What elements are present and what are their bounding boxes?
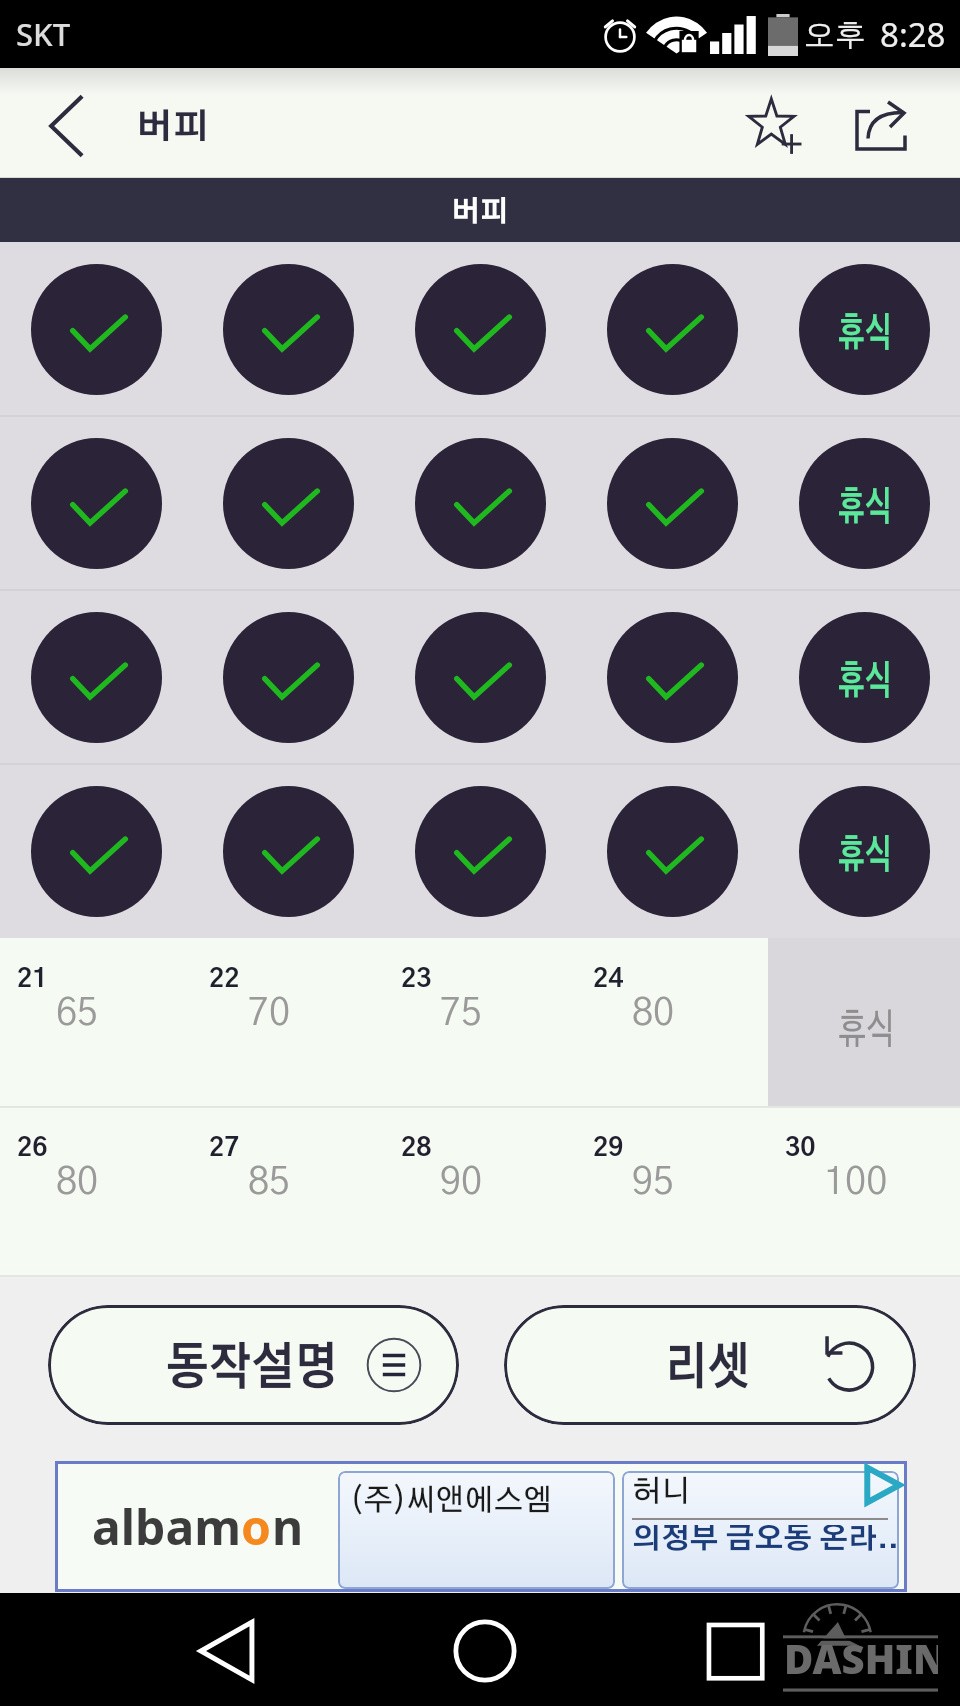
button[interactable]: Share [828,68,934,178]
staticText: 휴식 [838,836,892,875]
staticText: 27 [209,1135,240,1161]
staticText: o [241,1494,272,1559]
button[interactable] [384,242,576,416]
button[interactable] [576,764,768,938]
button[interactable]: 휴식 [768,764,960,938]
staticText: 70 [248,995,291,1033]
button[interactable] [576,416,768,590]
staticText: 21 [17,966,48,992]
button[interactable]: Advertisement [58,1464,904,1589]
button[interactable]: 휴식 [768,938,960,1107]
button[interactable]: 휴식 [768,416,960,590]
staticText: (주)씨앤에스엠 [350,1486,553,1516]
staticText: DASHIN [784,1631,938,1685]
staticText: 휴식 [838,662,892,701]
button[interactable]: 29 [576,1107,768,1277]
button[interactable]: Home [424,1593,537,1706]
button[interactable]: Back [0,68,132,178]
staticText: 23 [401,966,432,992]
button[interactable]: 30 [768,1107,960,1277]
staticText: 26 [17,1135,48,1161]
staticText: 휴식 [838,1010,895,1051]
staticText: albam [92,1494,241,1559]
staticText: 8:28 [880,12,946,57]
button[interactable] [0,590,192,764]
staticText: 65 [56,995,99,1033]
button[interactable]: 휴식 [768,242,960,416]
button[interactable]: 동작설명 [48,1305,459,1425]
staticText: 90 [440,1164,483,1202]
staticText: 28 [401,1135,432,1161]
staticText: 오후 [804,15,866,54]
staticText: 24 [593,966,624,992]
staticText: n [272,1494,304,1559]
staticText: 80 [56,1164,99,1202]
button[interactable]: 26 [0,1107,192,1277]
staticText: 의정부 금오동 온라... [632,1525,899,1554]
staticText: 허니 [632,1477,691,1507]
staticText: 75 [440,995,483,1033]
button[interactable] [384,416,576,590]
staticText: 22 [209,966,240,992]
button[interactable] [192,764,384,938]
button[interactable]: 리셋 [504,1305,916,1425]
button[interactable] [0,416,192,590]
button[interactable]: Back [170,1593,283,1706]
button[interactable]: 21 [0,938,192,1107]
button[interactable] [384,590,576,764]
button[interactable]: Recent apps [678,1593,791,1706]
staticText: SKT [16,13,71,55]
button[interactable] [576,590,768,764]
button[interactable]: 23 [384,938,576,1107]
staticText: 30 [785,1135,816,1161]
button[interactable]: 22 [192,938,384,1107]
button[interactable] [576,242,768,416]
button[interactable]: 28 [384,1107,576,1277]
button[interactable] [192,416,384,590]
button[interactable] [192,242,384,416]
staticText: 동작설명 [166,1345,338,1394]
staticText: 95 [632,1164,675,1202]
button[interactable]: 휴식 [768,590,960,764]
staticText: 80 [632,995,675,1033]
staticText: 29 [593,1135,624,1161]
button[interactable] [384,764,576,938]
button[interactable] [192,590,384,764]
staticText: 85 [248,1164,291,1202]
staticText: 리셋 [665,1345,751,1394]
staticText: 휴식 [838,488,892,527]
staticText: 휴식 [838,314,892,353]
staticText: 100 [824,1164,888,1202]
button[interactable]: 27 [192,1107,384,1277]
button[interactable] [0,764,192,938]
staticText: 버피 [451,198,509,227]
staticText: 버피 [136,110,210,144]
button[interactable]: 24 [576,938,768,1107]
button[interactable]: Add to favorites [724,68,828,178]
button[interactable] [0,242,192,416]
